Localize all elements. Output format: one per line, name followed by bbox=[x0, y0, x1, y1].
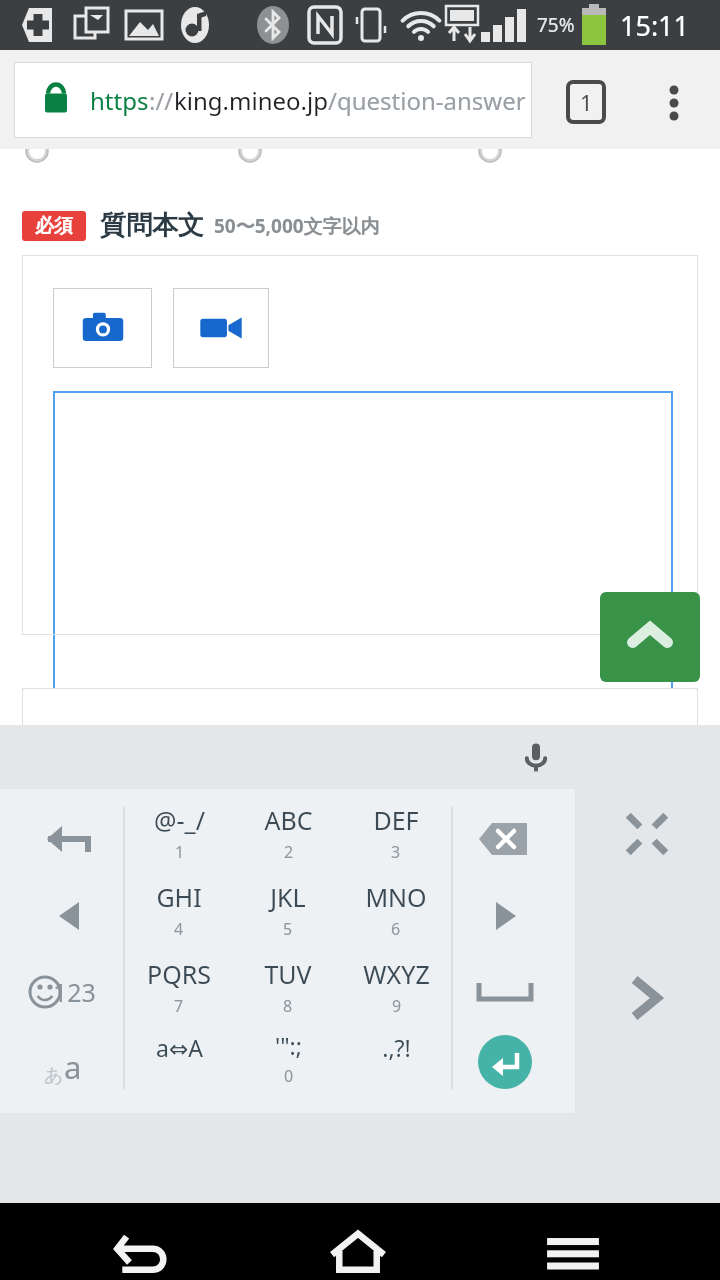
staticText: 2 bbox=[284, 841, 294, 863]
staticText: '":; bbox=[275, 1030, 302, 1061]
button[interactable]: '":; bbox=[234, 1030, 342, 1100]
button[interactable]: あ bbox=[8, 1039, 118, 1095]
staticText: https bbox=[90, 84, 149, 117]
button[interactable]: Home bbox=[322, 1215, 394, 1280]
staticText: :// bbox=[149, 84, 174, 117]
button[interactable]: 123 bbox=[6, 967, 116, 1017]
button[interactable]: Add photo bbox=[53, 288, 152, 368]
staticText: 75% bbox=[537, 12, 575, 38]
staticText: MNO bbox=[365, 880, 427, 914]
staticText: あ bbox=[44, 1064, 64, 1088]
button[interactable]: Move keyboard right bbox=[619, 970, 675, 1026]
button[interactable]: JKL bbox=[234, 880, 342, 950]
staticText: WXYZ bbox=[363, 957, 430, 991]
staticText: 4 bbox=[174, 918, 184, 940]
staticText: DEF bbox=[373, 803, 419, 837]
staticText: 1 bbox=[175, 841, 185, 863]
staticText: 8 bbox=[283, 995, 293, 1017]
button[interactable]: Tabs bbox=[562, 78, 610, 126]
staticText: king.mineo.jp bbox=[174, 84, 328, 117]
staticText: GHI bbox=[156, 880, 202, 914]
staticText: 0 bbox=[284, 1065, 294, 1087]
button[interactable]: Recent apps bbox=[537, 1215, 609, 1280]
staticText: a⇔A bbox=[156, 1032, 203, 1063]
button[interactable]: ABC bbox=[234, 803, 342, 873]
staticText: 必須 bbox=[35, 214, 73, 238]
staticText: TUV bbox=[264, 957, 312, 991]
button[interactable]: Scroll to top bbox=[600, 592, 700, 682]
button[interactable]: .,?! bbox=[342, 1032, 450, 1102]
button[interactable]: TUV bbox=[234, 957, 342, 1027]
button[interactable]: PQRS bbox=[125, 957, 233, 1027]
staticText: a bbox=[64, 1046, 82, 1088]
button[interactable]: Add video bbox=[173, 288, 269, 368]
button[interactable]: Voice input bbox=[508, 729, 564, 785]
staticText: ABC bbox=[264, 803, 313, 837]
staticText: 15:11 bbox=[620, 7, 690, 44]
button[interactable]: GHI bbox=[125, 880, 233, 950]
button[interactable]: @-_/ bbox=[125, 803, 233, 873]
staticText: 1 bbox=[580, 87, 593, 117]
staticText: 50〜5,000文字以内 bbox=[214, 213, 380, 239]
staticText: @-_/ bbox=[154, 803, 205, 837]
button[interactable]: More options bbox=[650, 78, 698, 126]
button[interactable]: Resize keyboard bbox=[623, 810, 671, 858]
staticText: 質問本文 bbox=[100, 209, 204, 242]
staticText: 3 bbox=[391, 841, 401, 863]
staticText: .,?! bbox=[382, 1032, 411, 1063]
staticText: 6 bbox=[391, 918, 401, 940]
staticText: 123 bbox=[53, 975, 96, 1009]
button[interactable]: https bbox=[14, 62, 532, 138]
staticText: 9 bbox=[392, 995, 402, 1017]
button[interactable] bbox=[53, 391, 673, 693]
button[interactable]: DEF bbox=[342, 803, 450, 873]
button[interactable]: WXYZ bbox=[342, 957, 450, 1027]
staticText: 5 bbox=[283, 918, 293, 940]
button[interactable]: Back bbox=[105, 1215, 177, 1280]
button[interactable]: a⇔A bbox=[125, 1032, 233, 1102]
staticText: /question-answer bbox=[328, 84, 526, 117]
button[interactable]: MNO bbox=[342, 880, 450, 950]
staticText: 7 bbox=[174, 995, 184, 1017]
staticText: JKL bbox=[270, 880, 306, 914]
staticText: PQRS bbox=[147, 957, 211, 991]
